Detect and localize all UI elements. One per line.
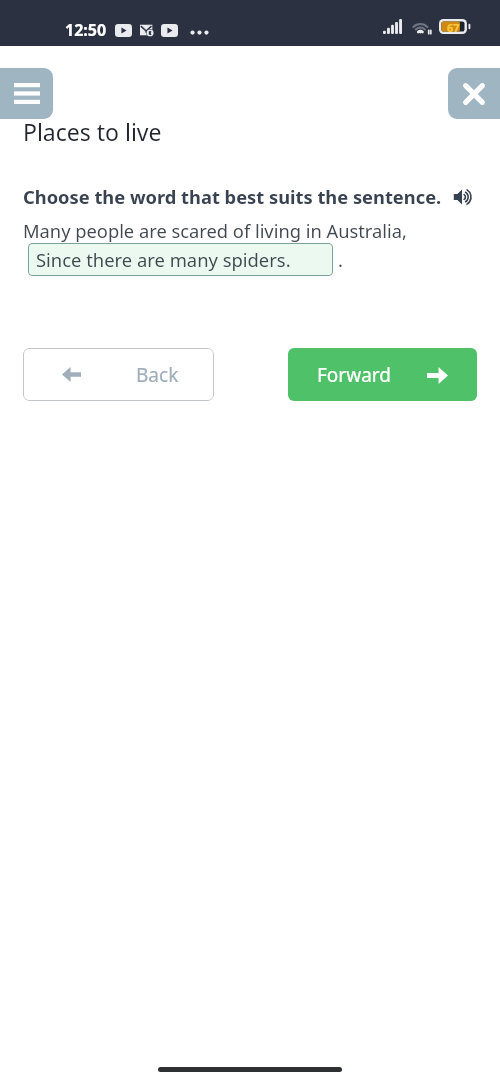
button[interactable]: Forward bbox=[288, 348, 477, 401]
button[interactable]: Menu bbox=[0, 68, 53, 119]
staticText: Many people are scared of living in Aust… bbox=[23, 218, 407, 243]
staticText: Places to live bbox=[23, 116, 162, 147]
button[interactable]: Since there are many spiders. bbox=[28, 243, 333, 276]
staticText: 67 bbox=[447, 20, 460, 35]
button[interactable]: Back bbox=[23, 348, 214, 401]
staticText: 12:50 bbox=[65, 19, 107, 41]
staticText: Choose the word that best suits the sent… bbox=[23, 184, 442, 209]
button[interactable]: Close bbox=[448, 68, 500, 119]
staticText: . bbox=[338, 248, 343, 273]
button[interactable]: Play audio bbox=[451, 185, 475, 209]
staticText: Forward bbox=[317, 362, 391, 388]
staticText: Since there are many spiders. bbox=[36, 247, 291, 272]
staticText: Back bbox=[136, 362, 179, 388]
